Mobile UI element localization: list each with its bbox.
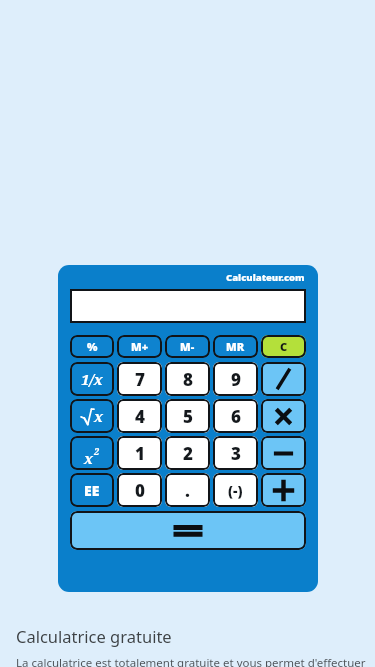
- button[interactable]: 4: [117, 399, 162, 433]
- staticText: .: [185, 479, 190, 502]
- staticText: x: [84, 448, 94, 468]
- staticText: 8: [183, 368, 193, 391]
- button[interactable]: 6: [213, 399, 258, 433]
- staticText: 6: [231, 405, 241, 428]
- button[interactable]: Equals: [70, 511, 306, 550]
- button[interactable]: 0: [117, 473, 162, 507]
- staticText: M+: [131, 339, 149, 354]
- staticText: 2: [183, 442, 193, 465]
- staticText: MR: [226, 339, 245, 354]
- button[interactable]: 2: [165, 436, 210, 470]
- button[interactable]: 3: [213, 436, 258, 470]
- button[interactable]: [70, 289, 306, 323]
- staticText: 4: [135, 405, 145, 428]
- button[interactable]: M-: [165, 335, 210, 358]
- button[interactable]: (-): [213, 473, 258, 507]
- button[interactable]: 1: [117, 436, 162, 470]
- staticText: C: [280, 339, 288, 354]
- button[interactable]: 9: [213, 362, 258, 396]
- staticText: (-): [228, 481, 243, 500]
- button[interactable]: sqrt: [70, 399, 114, 433]
- staticText: x: [94, 406, 104, 426]
- button[interactable]: M+: [117, 335, 162, 358]
- staticText: 3: [231, 442, 241, 465]
- staticText: 7: [135, 368, 145, 391]
- button[interactable]: 8: [165, 362, 210, 396]
- staticText: Calculateur.com: [226, 271, 305, 284]
- staticText: 5: [183, 405, 193, 428]
- staticText: EE: [84, 481, 100, 500]
- staticText: 1: [135, 442, 145, 465]
- button[interactable]: %: [70, 335, 114, 358]
- staticText: 2: [94, 445, 100, 457]
- staticText: 1/x: [81, 369, 103, 389]
- button[interactable]: multiply: [261, 399, 306, 433]
- button[interactable]: EE: [70, 473, 114, 507]
- staticText: M-: [180, 339, 195, 354]
- button[interactable]: 1/x: [70, 362, 114, 396]
- button[interactable]: x2: [70, 436, 114, 470]
- button[interactable]: MR: [213, 335, 258, 358]
- button[interactable]: C: [261, 335, 306, 358]
- staticText: 0: [135, 479, 145, 502]
- staticText: Calculatrice gratuite: [16, 625, 172, 647]
- staticText: La calculatrice est totalement gratuite …: [16, 655, 366, 667]
- button[interactable]: .: [165, 473, 210, 507]
- staticText: 9: [231, 368, 241, 391]
- staticText: %: [87, 339, 98, 354]
- button[interactable]: divide: [261, 362, 306, 396]
- button[interactable]: plus: [261, 473, 306, 507]
- button[interactable]: 7: [117, 362, 162, 396]
- button[interactable]: 5: [165, 399, 210, 433]
- button[interactable]: minus: [261, 436, 306, 470]
